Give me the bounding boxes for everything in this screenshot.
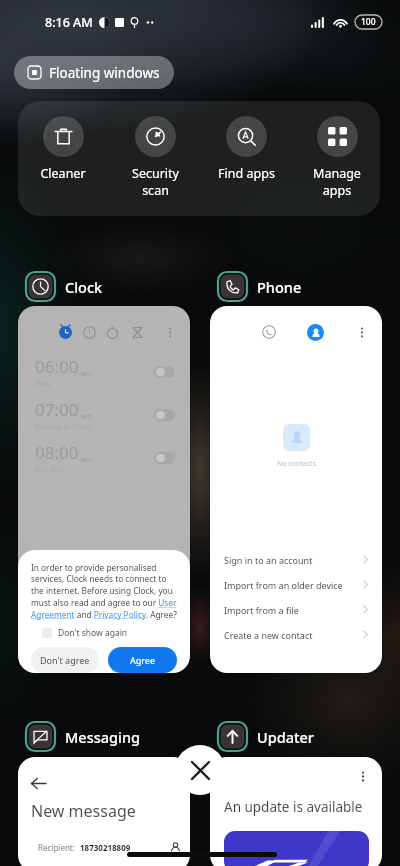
button[interactable]: Create a new contact xyxy=(210,622,382,647)
staticText: Agree xyxy=(130,654,155,666)
button[interactable]: Agree xyxy=(108,647,177,673)
button[interactable]: Cleaner xyxy=(20,116,106,182)
staticText: Clock xyxy=(65,277,103,297)
staticText: Monday to Friday xyxy=(35,422,93,432)
staticText: Import from a file xyxy=(224,604,299,616)
staticText: Messaging xyxy=(65,727,141,747)
staticText: Don't agree xyxy=(40,654,90,666)
staticText: 08:00 xyxy=(35,441,79,464)
staticText: Bon Bant xyxy=(35,465,66,475)
button[interactable]: Sign in to an account xyxy=(210,547,382,572)
staticText: Sign in to an account xyxy=(224,554,313,566)
staticText: 06:00 xyxy=(35,355,79,378)
button[interactable]: Find apps xyxy=(203,116,289,182)
staticText: Import from an older device xyxy=(224,579,343,591)
staticText: Security scan xyxy=(132,165,179,198)
staticText: Don't show again xyxy=(58,627,128,639)
button[interactable]: Floating windows xyxy=(14,56,174,89)
staticText: Cleaner xyxy=(40,165,86,182)
staticText: Floating windows xyxy=(49,64,160,82)
button[interactable]: Messaging xyxy=(26,722,141,751)
staticText: In order to provide personalised service… xyxy=(31,562,177,620)
button[interactable]: Security scan xyxy=(112,116,198,198)
button[interactable]: An update is available xyxy=(210,757,382,866)
button[interactable]: Clock xyxy=(26,272,103,301)
staticText: am xyxy=(81,454,93,464)
staticText: An update is available xyxy=(224,798,363,816)
staticText: Create a new contact xyxy=(224,629,313,641)
button[interactable]: Phone xyxy=(218,272,302,301)
button[interactable]: 06:00 xyxy=(18,306,190,673)
staticText: Daily xyxy=(35,379,52,389)
staticText: Find apps xyxy=(218,165,275,182)
staticText: Manage apps xyxy=(313,165,361,198)
button[interactable]: Import from a file xyxy=(210,597,382,622)
staticText: New message xyxy=(31,800,136,822)
staticText: Recipient: xyxy=(38,842,75,853)
staticText: Updater xyxy=(257,727,314,747)
staticText: am xyxy=(81,368,93,378)
button[interactable]: Import from an older device xyxy=(210,572,382,597)
staticText: Phone xyxy=(257,277,302,297)
button[interactable]: New message xyxy=(18,757,190,866)
staticText: 07:00 xyxy=(35,398,79,421)
staticText: 100 xyxy=(361,16,376,28)
button[interactable]: Don't show again xyxy=(31,627,128,639)
button[interactable]: Don't agree xyxy=(31,647,99,673)
button[interactable]: Close all xyxy=(175,745,225,795)
staticText: 8:16 AM xyxy=(45,14,93,31)
button[interactable]: No contacts xyxy=(210,306,382,673)
staticText: No contacts xyxy=(277,459,316,469)
staticText: 18730218809 xyxy=(80,842,131,853)
button[interactable]: Manage apps xyxy=(294,116,380,198)
staticText: am xyxy=(81,411,93,421)
button[interactable]: Updater xyxy=(218,722,314,751)
